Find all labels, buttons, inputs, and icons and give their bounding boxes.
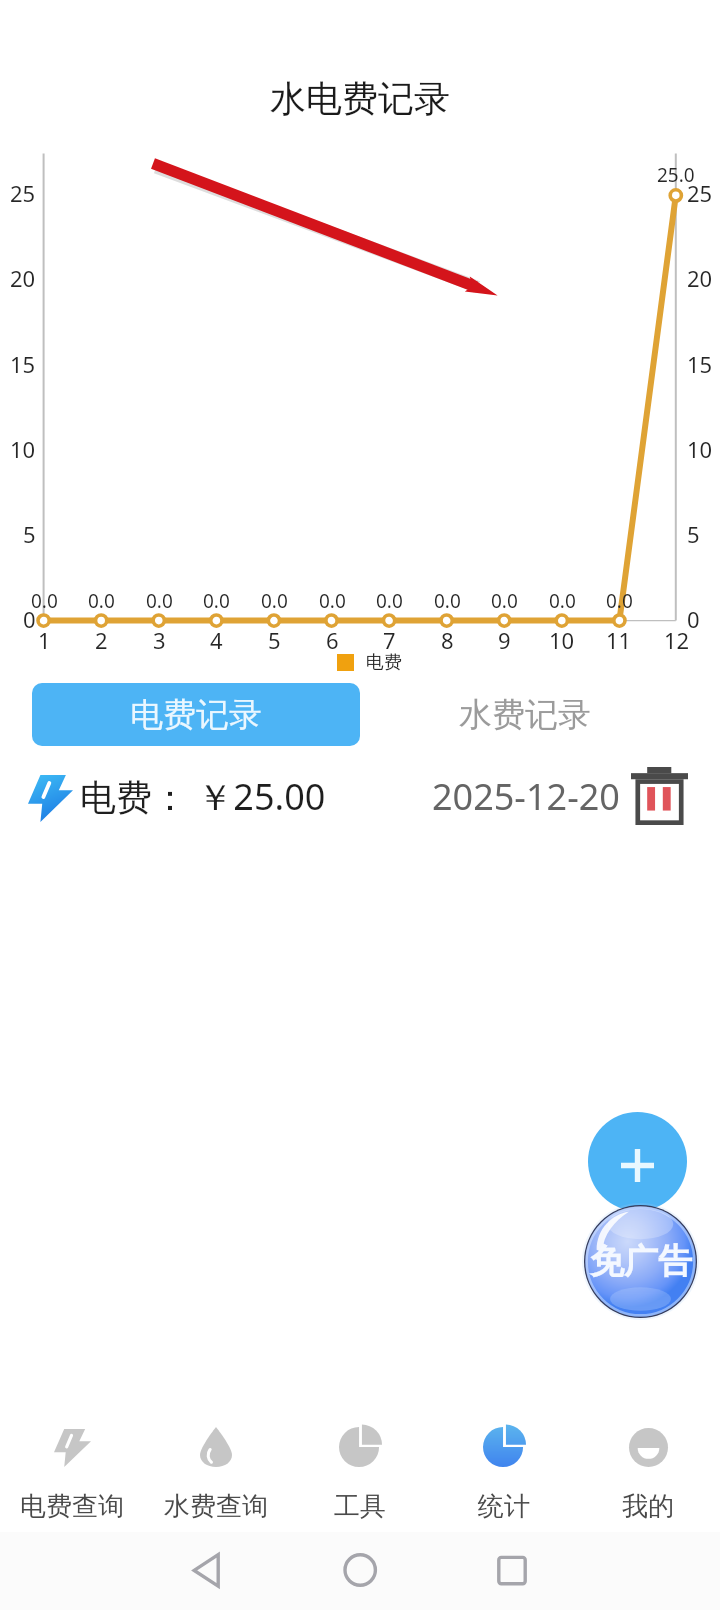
staticText: 水费记录 bbox=[459, 694, 591, 736]
staticText: 0 bbox=[687, 604, 700, 634]
staticText: 7 bbox=[383, 625, 396, 655]
staticText: 5 bbox=[268, 625, 281, 655]
staticText: 水电费记录 bbox=[270, 76, 450, 121]
staticText: 统计 bbox=[478, 1490, 530, 1523]
button[interactable]: 电费查询 bbox=[0, 1398, 144, 1528]
staticText: 0.0 bbox=[261, 588, 288, 614]
staticText: 5 bbox=[687, 519, 700, 549]
staticText: 0.0 bbox=[146, 588, 173, 614]
staticText: 8 bbox=[441, 625, 454, 655]
staticText: 电费记录 bbox=[130, 694, 262, 736]
staticText: 4 bbox=[210, 625, 223, 655]
staticText: 水费查询 bbox=[164, 1490, 268, 1523]
button[interactable]: 水费记录 bbox=[360, 683, 690, 746]
staticText: 2 bbox=[95, 625, 108, 655]
staticText: 0.0 bbox=[434, 588, 461, 614]
staticText: 电费查询 bbox=[20, 1490, 124, 1523]
staticText: 0.0 bbox=[88, 588, 115, 614]
staticText: 15 bbox=[687, 349, 713, 379]
staticText: 20 bbox=[10, 263, 36, 293]
staticText: 10 bbox=[549, 625, 575, 655]
staticText: 6 bbox=[326, 625, 339, 655]
staticText: 0.0 bbox=[376, 588, 403, 614]
staticText: 20 bbox=[687, 263, 713, 293]
staticText: 9 bbox=[498, 625, 511, 655]
staticText: 0.0 bbox=[549, 588, 576, 614]
staticText: 10 bbox=[10, 434, 36, 464]
button[interactable]: 我的 bbox=[576, 1398, 720, 1528]
staticText: 3 bbox=[153, 625, 166, 655]
button[interactable]: 电费： ￥25.00 bbox=[0, 761, 720, 831]
staticText: 5 bbox=[23, 519, 36, 549]
staticText: 25 bbox=[687, 178, 713, 208]
staticText: 10 bbox=[687, 434, 713, 464]
staticText: 免广告 bbox=[590, 1240, 692, 1283]
button[interactable]: Delete bbox=[629, 766, 689, 826]
staticText: 0.0 bbox=[203, 588, 230, 614]
staticText: 0 bbox=[23, 604, 36, 634]
staticText: 工具 bbox=[334, 1490, 386, 1523]
staticText: 0.0 bbox=[319, 588, 346, 614]
staticText: 电费： ￥25.00 bbox=[80, 772, 326, 821]
button[interactable]: 统计 bbox=[432, 1398, 576, 1528]
staticText: 12 bbox=[664, 625, 690, 655]
button[interactable]: 水费查询 bbox=[144, 1398, 288, 1528]
button[interactable]: Add bbox=[588, 1112, 687, 1211]
staticText: 11 bbox=[606, 625, 632, 655]
staticText: 0.0 bbox=[491, 588, 518, 614]
staticText: 25 bbox=[10, 178, 36, 208]
button[interactable]: 电费记录 bbox=[32, 683, 360, 746]
staticText: 0.0 bbox=[606, 588, 633, 614]
staticText: 2025-12-20 bbox=[432, 772, 620, 821]
button[interactable]: 工具 bbox=[288, 1398, 432, 1528]
staticText: 0.0 bbox=[31, 588, 58, 614]
staticText: 1 bbox=[38, 625, 51, 655]
staticText: 25.0 bbox=[657, 162, 695, 188]
button[interactable]: Remove ads bbox=[582, 1203, 699, 1320]
staticText: 我的 bbox=[622, 1490, 674, 1523]
staticText: 15 bbox=[10, 349, 36, 379]
staticText: 电费 bbox=[366, 651, 402, 674]
